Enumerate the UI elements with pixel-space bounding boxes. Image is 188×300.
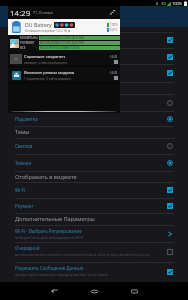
staticText: Скриншот сохранен	[24, 54, 65, 60]
staticText: 1 подключено, 0 заблокировано	[24, 77, 72, 81]
button[interactable]: Светлая	[0, 138, 188, 154]
staticText: 100%	[110, 23, 118, 27]
button[interactable]: Авто	[0, 94, 188, 111]
button[interactable]: Дополнительные Параметры	[0, 213, 188, 225]
staticText: Темная	[15, 160, 32, 166]
staticText: Отображать в виджете	[15, 173, 77, 181]
button[interactable]: Home	[74, 282, 114, 300]
staticText: 14:29	[110, 55, 118, 59]
button[interactable]: Wi-Fi	[0, 182, 188, 198]
staticText: 0	[156, 1, 159, 6]
staticText: Wi-Fi	[15, 187, 26, 193]
staticText: Звук	[15, 54, 25, 60]
staticText: Подсветка	[15, 116, 38, 122]
button[interactable]: Общие	[0, 21, 188, 32]
staticText: Вибрация	[15, 70, 37, 76]
staticText: Уведомления	[15, 37, 45, 43]
staticText: Wi-Fi - Выбрать Регулирование	[15, 228, 82, 234]
staticText: РОУМИНГ	[20, 41, 35, 45]
staticText: Общие	[15, 23, 35, 31]
staticText: Роуминг	[15, 203, 34, 209]
staticText: 14:29	[10, 7, 31, 18]
button[interactable]: Очередной	[0, 242, 188, 262]
staticText: детальной звонок дополнен исключительных…	[15, 252, 151, 257]
button[interactable]: Темы	[0, 126, 188, 138]
staticText: ВСЕГО ИСПОЛЬЗОВАНО 4,8 МБ	[40, 46, 80, 50]
staticText: Дополнительные Параметры	[15, 215, 95, 223]
button[interactable]: Включен режим модема	[8, 67, 120, 83]
button[interactable]: Recents	[114, 282, 154, 300]
staticText: Очередной	[15, 245, 40, 251]
staticText: ИСПОЛЬЗОВАНО 0,0 МБ ЗА 20 ЯНВ	[40, 41, 84, 45]
staticText: Включен режим модема	[24, 70, 75, 76]
staticText: выберите вид цикл регулирования Wi-Fi	[15, 235, 84, 240]
button[interactable]: Оформление	[0, 82, 188, 95]
button[interactable]: Темная	[0, 154, 188, 171]
staticText: ИСПОЛЬЗОВАНО 4,8 МБ ЗА 20 ЯНВ	[40, 36, 84, 40]
staticText: нажмите, чтобы просмотреть	[24, 61, 68, 65]
staticText: 100%	[172, 1, 183, 6]
button[interactable]: Уведомления	[0, 32, 188, 48]
staticText: 3G	[161, 1, 167, 6]
staticText: ВСЕ	[20, 46, 26, 50]
button[interactable]: Отображать в виджете	[0, 171, 188, 182]
button[interactable]: Скриншот сохранен	[8, 51, 120, 67]
button[interactable]: Settings	[109, 9, 116, 16]
staticText: Разрешить Сообщение Данных	[15, 265, 84, 271]
button[interactable]: DU Battery	[8, 19, 120, 35]
button[interactable]: Роуминг	[0, 198, 188, 213]
button[interactable]: Разрешить Сообщение Данных	[0, 262, 188, 282]
staticText: 14:29	[110, 71, 118, 75]
staticText: DU Battery	[25, 21, 52, 28]
staticText: предоставить включить передачу данных, е…	[15, 272, 108, 277]
button[interactable]: МОБИЛЬНЫЕ	[8, 35, 120, 51]
staticText: Светлая	[15, 143, 33, 149]
staticText: Темы	[15, 128, 30, 136]
staticText: ПТ, 20 января	[33, 11, 53, 15]
staticText: МОБИЛЬНЫЕ	[20, 36, 38, 40]
button[interactable]: Вибрация	[0, 64, 188, 81]
staticText: 6,6°C	[110, 28, 118, 32]
button[interactable]: Звук	[0, 48, 188, 65]
button[interactable]: Back	[34, 282, 74, 300]
button[interactable]: Подсветка	[0, 111, 188, 126]
button[interactable]: Wi-Fi - Выбрать Регулирование	[0, 225, 188, 242]
staticText: Оставшееся время: 12 ч 18 м	[25, 29, 71, 33]
